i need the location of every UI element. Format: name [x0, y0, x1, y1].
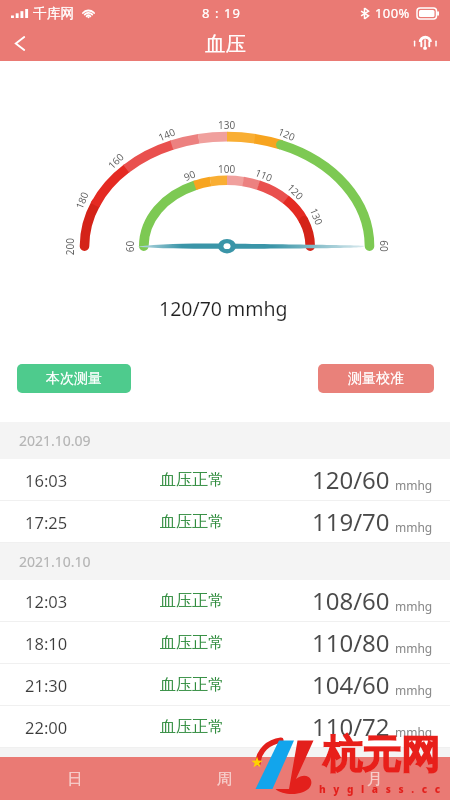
button[interactable]: 本次测量	[17, 364, 131, 393]
staticText: 17:25	[25, 511, 68, 533]
staticText: 血压正常	[160, 591, 224, 611]
staticText: mmhg	[395, 519, 433, 535]
staticText: 119/70	[312, 505, 390, 538]
staticText: 22:00	[25, 716, 68, 738]
staticText: 2021.10.09	[19, 431, 91, 450]
staticText: 千库网	[33, 5, 75, 22]
staticText: 104/60	[312, 668, 390, 701]
staticText: mmhg	[395, 477, 433, 493]
staticText: 12:03	[25, 590, 68, 612]
button[interactable]: 日	[0, 757, 150, 800]
staticText: mmhg	[395, 682, 433, 698]
staticText: 血压	[205, 31, 246, 57]
staticText: 血压正常	[160, 717, 224, 737]
staticText: 血压正常	[160, 512, 224, 532]
button[interactable]: Device	[404, 24, 444, 59]
staticText: 周	[217, 769, 233, 789]
staticText: 110/80	[312, 626, 390, 659]
staticText: mmhg	[395, 598, 433, 614]
staticText: 血压正常	[160, 633, 224, 653]
staticText: 108/60	[312, 584, 390, 617]
button[interactable]: 12:03	[0, 580, 450, 621]
staticText: 2021.10.10	[19, 552, 91, 571]
button[interactable]: 月	[300, 757, 450, 800]
staticText: 测量校准	[348, 370, 404, 388]
staticText: 血压正常	[160, 675, 224, 695]
button[interactable]: 22:00	[0, 706, 450, 747]
staticText: 本次测量	[46, 370, 102, 388]
staticText: 18:10	[25, 632, 68, 654]
button[interactable]: Back	[0, 26, 40, 61]
button[interactable]: 周	[150, 757, 300, 800]
staticText: 120/70 mmhg	[159, 295, 288, 322]
button[interactable]: 17:25	[0, 501, 450, 542]
button[interactable]: 测量校准	[318, 364, 434, 393]
staticText: mmhg	[395, 724, 433, 740]
staticText: 100%	[375, 4, 410, 22]
staticText: 110/72	[312, 710, 390, 743]
staticText: 日	[67, 769, 83, 789]
staticText: 月	[367, 769, 383, 789]
button[interactable]: 16:03	[0, 459, 450, 500]
staticText: 21:30	[25, 674, 68, 696]
staticText: mmhg	[395, 640, 433, 656]
staticText: 血压正常	[160, 470, 224, 490]
button[interactable]: 21:30	[0, 664, 450, 705]
button[interactable]: 18:10	[0, 622, 450, 663]
staticText: 120/60	[312, 463, 390, 496]
staticText: 16:03	[25, 469, 68, 491]
staticText: 8 : 19	[202, 4, 242, 22]
